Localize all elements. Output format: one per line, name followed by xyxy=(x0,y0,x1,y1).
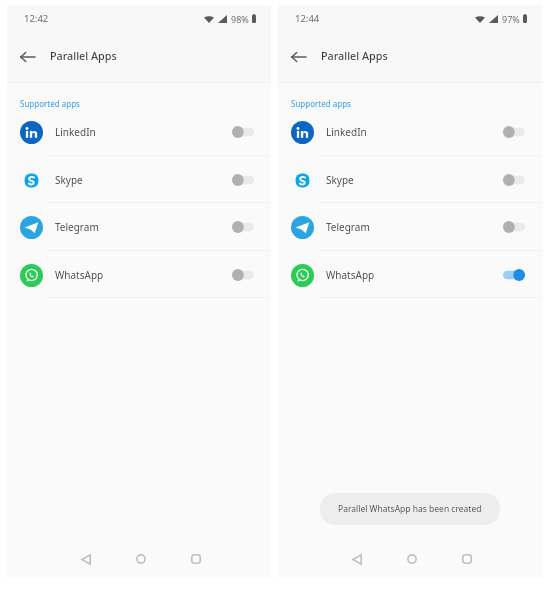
staticText: Parallel WhatsApp has been created xyxy=(338,503,482,515)
staticText: LinkedIn xyxy=(326,125,367,139)
button[interactable]: LinkedIn parallel app off xyxy=(503,125,525,139)
button[interactable]: Skype parallel app off xyxy=(232,173,254,187)
button[interactable]: Recent apps xyxy=(180,544,212,574)
button[interactable]: WhatsApp parallel app off xyxy=(232,268,254,282)
button[interactable]: Telegram parallel app off xyxy=(503,220,525,234)
button[interactable]: Skype xyxy=(278,156,542,204)
button[interactable]: Navigate up xyxy=(284,43,312,71)
button[interactable]: LinkedIn xyxy=(7,108,271,156)
staticText: Parallel Apps xyxy=(321,48,388,63)
staticText: WhatsApp xyxy=(326,268,375,282)
button[interactable]: Back xyxy=(341,544,373,574)
staticText: 98% xyxy=(231,13,249,25)
button[interactable]: Telegram xyxy=(278,203,542,251)
staticText: Supported apps xyxy=(291,98,351,109)
button[interactable]: Telegram parallel app off xyxy=(232,220,254,234)
staticText: LinkedIn xyxy=(55,125,96,139)
button[interactable]: Home xyxy=(396,544,428,574)
staticText: Telegram xyxy=(326,220,370,234)
button[interactable]: Back xyxy=(70,544,102,574)
staticText: Parallel Apps xyxy=(50,48,117,63)
button[interactable]: LinkedIn parallel app off xyxy=(232,125,254,139)
button[interactable]: WhatsApp parallel app on xyxy=(503,268,525,282)
button[interactable]: Telegram xyxy=(7,203,271,251)
staticText: 12:44 xyxy=(295,12,320,25)
staticText: 97% xyxy=(502,13,520,25)
button[interactable]: Navigate up xyxy=(13,43,41,71)
staticText: Telegram xyxy=(55,220,99,234)
button[interactable]: LinkedIn xyxy=(278,108,542,156)
button[interactable]: WhatsApp xyxy=(7,251,271,299)
button[interactable]: WhatsApp xyxy=(278,251,542,299)
button[interactable]: Recent apps xyxy=(451,544,483,574)
staticText: Skype xyxy=(55,173,83,187)
button[interactable]: Home xyxy=(125,544,157,574)
staticText: 12:42 xyxy=(24,12,49,25)
button[interactable]: Skype parallel app off xyxy=(503,173,525,187)
staticText: WhatsApp xyxy=(55,268,104,282)
staticText: Skype xyxy=(326,173,354,187)
staticText: Supported apps xyxy=(20,98,80,109)
button[interactable]: Skype xyxy=(7,156,271,204)
